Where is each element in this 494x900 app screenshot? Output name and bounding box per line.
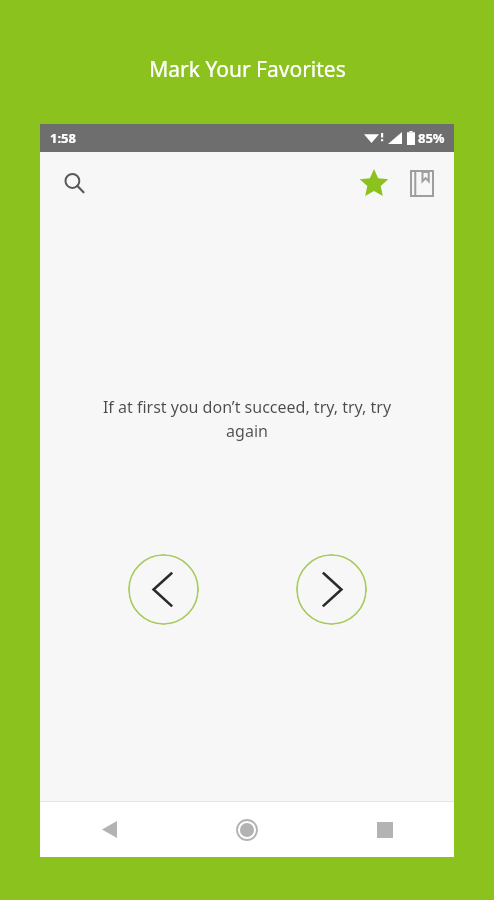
button[interactable]: Bookmarks — [398, 159, 446, 207]
button[interactable]: Next — [296, 554, 367, 625]
staticText: If at first you don’t succeed, try, try,… — [90, 396, 404, 442]
staticText: 1:58 — [50, 129, 76, 147]
button[interactable]: Favorite — [350, 159, 398, 207]
button[interactable]: Previous — [128, 554, 199, 625]
button[interactable]: Search — [50, 159, 98, 207]
staticText: 85% — [418, 129, 445, 147]
staticText: Mark Your Favorites — [149, 55, 346, 84]
button[interactable]: Home — [178, 802, 316, 857]
button[interactable]: Recents — [316, 802, 454, 857]
button[interactable]: Back — [40, 802, 178, 857]
